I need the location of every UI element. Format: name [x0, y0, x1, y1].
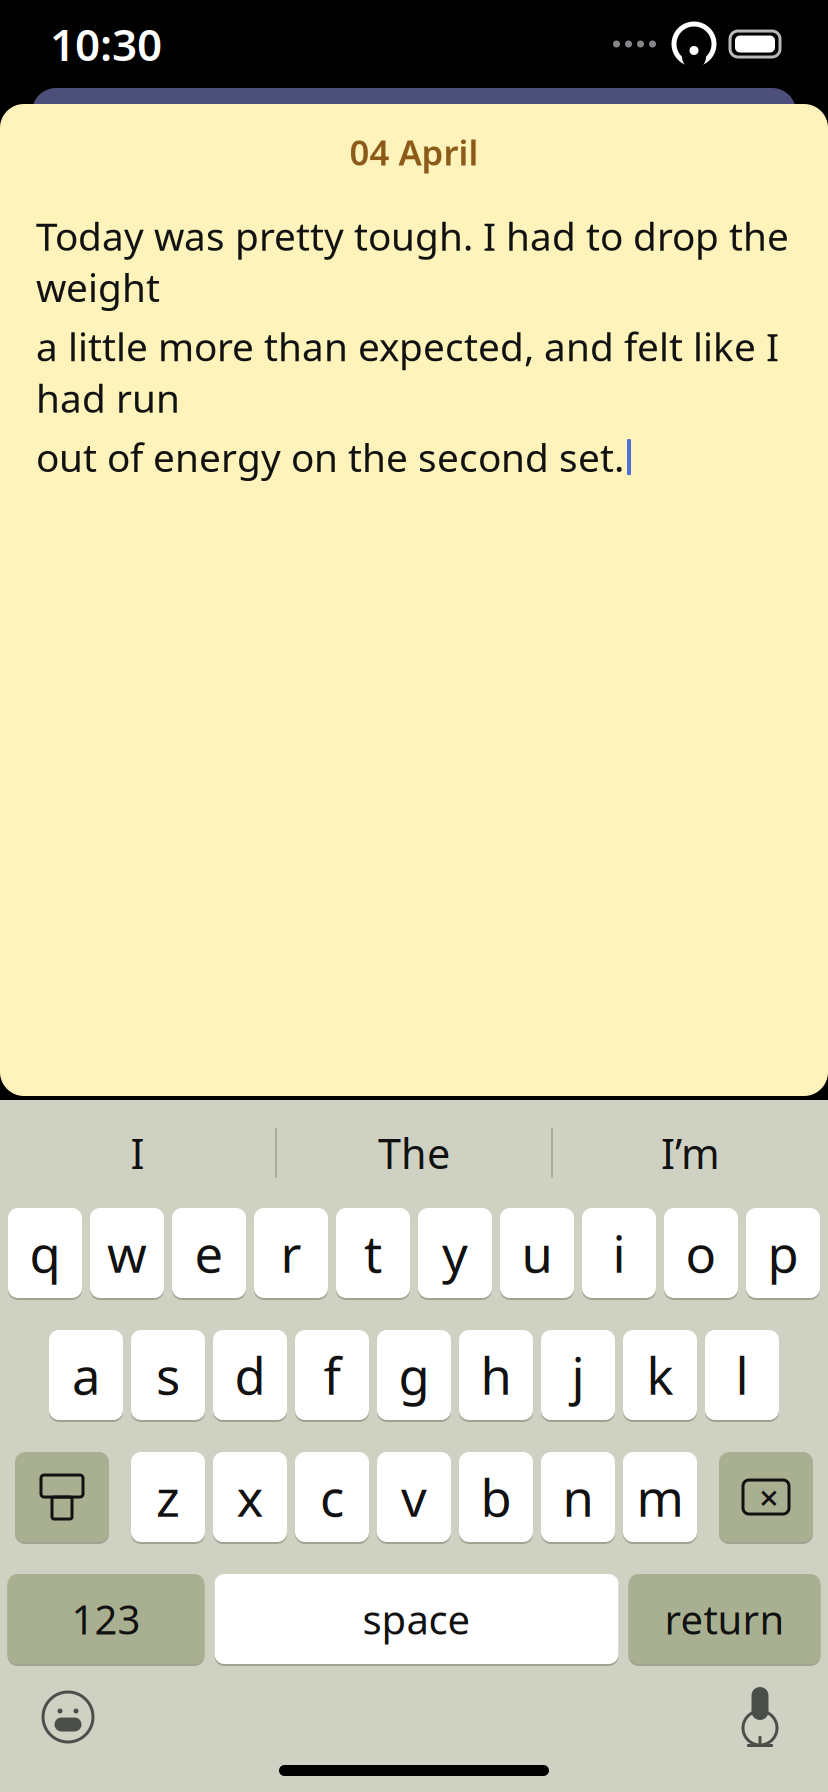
staticText: g: [398, 1341, 429, 1409]
staticText: h: [480, 1341, 511, 1409]
staticText: f: [323, 1341, 340, 1409]
button[interactable]: w: [90, 1206, 164, 1300]
staticText: ×: [759, 1474, 779, 1520]
staticText: l: [735, 1341, 748, 1409]
staticText: q: [29, 1219, 60, 1287]
staticText: I’m: [661, 1126, 720, 1180]
button[interactable]: k: [623, 1328, 697, 1422]
button[interactable]: 123: [7, 1572, 204, 1666]
button[interactable]: j: [541, 1328, 615, 1422]
staticText: u: [521, 1219, 552, 1287]
button[interactable]: v: [377, 1450, 451, 1544]
staticText: m: [636, 1463, 683, 1531]
staticText: out of energy on the second set.: [36, 431, 624, 483]
button[interactable]: u: [500, 1206, 574, 1300]
staticText: a little more than expected, and felt li…: [36, 321, 779, 423]
button[interactable]: y: [418, 1206, 492, 1300]
button[interactable]: Delete: [719, 1450, 813, 1544]
button[interactable]: a: [49, 1328, 123, 1422]
staticText: 123: [71, 1592, 140, 1645]
button[interactable]: Dictate: [723, 1680, 797, 1754]
staticText: return: [664, 1592, 784, 1645]
button[interactable]: Emoji: [31, 1680, 105, 1754]
staticText: s: [156, 1341, 180, 1409]
button[interactable]: i: [582, 1206, 656, 1300]
staticText: z: [156, 1463, 180, 1531]
button[interactable]: z: [131, 1450, 205, 1544]
button[interactable]: I’m: [553, 1100, 828, 1206]
staticText: e: [194, 1219, 223, 1287]
staticText: x: [236, 1463, 263, 1531]
staticText: 04 April: [349, 129, 478, 175]
staticText: 10:30: [50, 15, 162, 73]
button[interactable]: q: [8, 1206, 82, 1300]
button[interactable]: m: [623, 1450, 697, 1544]
staticText: a: [72, 1341, 100, 1409]
staticText: v: [401, 1463, 427, 1531]
staticText: The: [378, 1126, 450, 1180]
button[interactable]: space: [214, 1572, 618, 1666]
staticText: j: [571, 1341, 584, 1409]
button[interactable]: e: [172, 1206, 246, 1300]
button[interactable]: t: [336, 1206, 410, 1300]
staticText: o: [685, 1219, 716, 1287]
button[interactable]: f: [295, 1328, 369, 1422]
staticText: n: [562, 1463, 593, 1531]
staticText: i: [612, 1219, 625, 1287]
staticText: p: [767, 1219, 798, 1287]
staticText: t: [364, 1219, 382, 1287]
staticText: b: [480, 1463, 511, 1531]
staticText: I: [130, 1126, 144, 1180]
button[interactable]: h: [459, 1328, 533, 1422]
button[interactable]: l: [705, 1328, 779, 1422]
button[interactable]: o: [664, 1206, 738, 1300]
button[interactable]: r: [254, 1206, 328, 1300]
staticText: c: [320, 1463, 344, 1531]
button[interactable]: c: [295, 1450, 369, 1544]
staticText: y: [442, 1219, 468, 1287]
button[interactable]: g: [377, 1328, 451, 1422]
button[interactable]: x: [213, 1450, 287, 1544]
button[interactable]: n: [541, 1450, 615, 1544]
button[interactable]: return: [628, 1572, 820, 1666]
staticText: r: [280, 1219, 301, 1287]
staticText: space: [362, 1592, 470, 1645]
button[interactable]: b: [459, 1450, 533, 1544]
button[interactable]: I: [0, 1100, 275, 1206]
button[interactable]: d: [213, 1328, 287, 1422]
button[interactable]: The: [277, 1100, 551, 1206]
staticText: w: [107, 1219, 147, 1287]
staticText: Today was pretty tough. I had to drop th…: [36, 210, 789, 313]
staticText: k: [646, 1341, 673, 1409]
button[interactable]: s: [131, 1328, 205, 1422]
staticText: d: [234, 1341, 265, 1409]
button[interactable]: Shift: [15, 1450, 109, 1544]
button[interactable]: p: [746, 1206, 820, 1300]
